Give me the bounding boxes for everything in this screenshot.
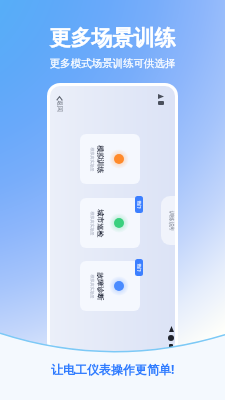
- button[interactable]: 训练说明: [161, 196, 175, 245]
- staticText: 训练说明: [167, 210, 174, 230]
- staticText: 热门中: [136, 200, 141, 208]
- staticText: 热门中: [136, 263, 141, 271]
- staticText: 模拟真实场景: [89, 274, 94, 298]
- staticText: 模拟真实场景: [89, 147, 94, 171]
- staticText: 更多场景训练: [0, 25, 225, 51]
- staticText: 更多模式场景训练可供选择: [0, 57, 225, 70]
- staticText: 城市巡检: [95, 209, 104, 237]
- staticText: 模拟真实场景: [89, 211, 94, 235]
- button[interactable]: 故障诊断: [80, 261, 140, 311]
- staticText: 让电工仪表操作更简单!: [51, 361, 175, 377]
- button[interactable]: 城市巡检: [80, 198, 140, 248]
- staticText: 返回: [56, 100, 64, 112]
- button[interactable]: 模拟训练: [80, 134, 140, 184]
- button[interactable]: 返回: [52, 91, 66, 105]
- staticText: 故障诊断: [95, 272, 104, 300]
- staticText: 模拟训练: [95, 145, 104, 173]
